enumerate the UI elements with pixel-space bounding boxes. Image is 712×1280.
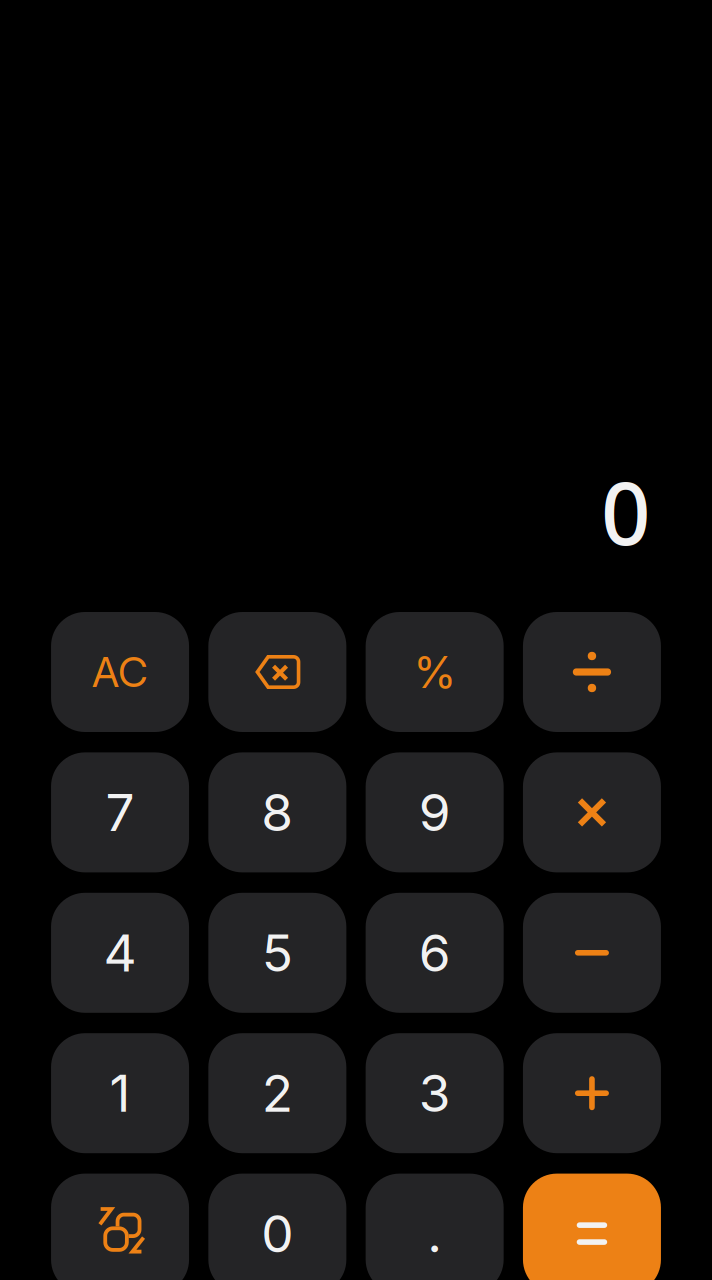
staticText: 8 (261, 781, 293, 843)
button[interactable]: Equals (523, 1174, 661, 1280)
button[interactable]: Add (523, 1033, 661, 1153)
staticText: 2 (262, 1062, 293, 1124)
staticText: . (427, 1202, 442, 1265)
button[interactable]: 0 (208, 1174, 346, 1280)
button[interactable]: 2 (208, 1033, 346, 1153)
button[interactable]: Convert (51, 1174, 189, 1280)
button[interactable]: Subtract (523, 893, 661, 1013)
button[interactable]: 9 (366, 752, 504, 872)
staticText: 5 (262, 922, 293, 984)
button[interactable]: 6 (366, 893, 504, 1013)
staticText: AC (92, 647, 148, 697)
button[interactable]: 8 (208, 752, 346, 872)
staticText: 1 (110, 1062, 131, 1124)
staticText: 6 (419, 922, 451, 984)
staticText: 0 (601, 454, 651, 569)
button[interactable]: Multiply (523, 752, 661, 872)
staticText: 3 (419, 1062, 451, 1124)
button[interactable]: Divide (523, 612, 661, 732)
button[interactable]: 5 (208, 893, 346, 1013)
button[interactable]: 3 (366, 1033, 504, 1153)
staticText: 0 (261, 1202, 293, 1265)
staticText: 9 (419, 781, 451, 843)
button[interactable]: Delete (208, 612, 346, 732)
staticText: 7 (106, 781, 135, 843)
button[interactable]: 1 (51, 1033, 189, 1153)
button[interactable]: % (366, 612, 504, 732)
staticText: % (413, 645, 456, 699)
button[interactable]: 4 (51, 893, 189, 1013)
staticText: 4 (104, 922, 137, 984)
button[interactable]: AC (51, 612, 189, 732)
button[interactable]: 7 (51, 752, 189, 872)
button[interactable]: . (366, 1174, 504, 1280)
